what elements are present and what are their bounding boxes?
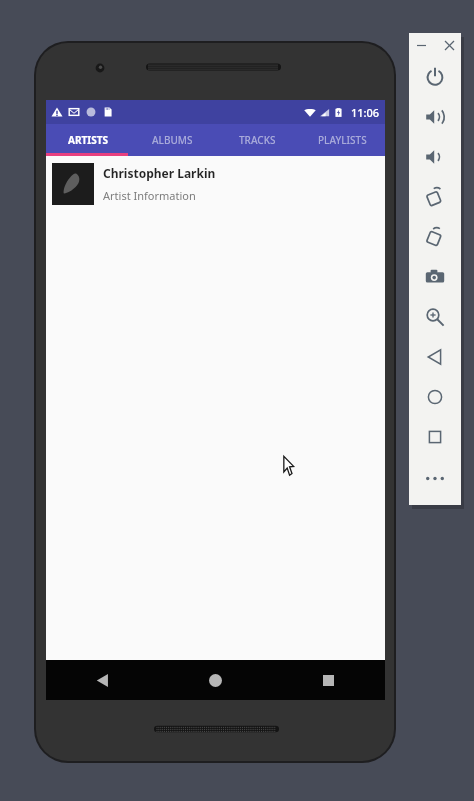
- button[interactable]: TRACKS: [215, 124, 300, 156]
- button[interactable]: Back: [409, 337, 461, 377]
- staticText: 11:06: [351, 105, 380, 120]
- staticText: ARTISTS: [68, 133, 108, 147]
- button[interactable]: Minimize: [412, 36, 430, 54]
- button[interactable]: ALBUMS: [130, 124, 215, 156]
- button[interactable]: Home: [409, 377, 461, 417]
- button[interactable]: Take screenshot: [409, 257, 461, 297]
- button[interactable]: Rotate right: [409, 217, 461, 257]
- button[interactable]: Rotate left: [409, 177, 461, 217]
- button[interactable]: Volume down: [409, 137, 461, 177]
- button[interactable]: More: [415, 465, 455, 491]
- button[interactable]: Christopher Larkin: [46, 156, 385, 212]
- button[interactable]: Back: [46, 660, 159, 700]
- button[interactable]: Power: [409, 57, 461, 97]
- staticText: Christopher Larkin: [103, 165, 216, 181]
- button[interactable]: Close: [440, 36, 458, 54]
- button[interactable]: Volume up: [409, 97, 461, 137]
- staticText: Artist Information: [103, 188, 196, 203]
- staticText: TRACKS: [239, 133, 276, 147]
- button[interactable]: Home: [159, 660, 272, 700]
- staticText: PLAYLISTS: [318, 133, 367, 147]
- button[interactable]: ARTISTS: [46, 124, 130, 156]
- button[interactable]: Recent apps: [272, 660, 385, 700]
- button[interactable]: PLAYLISTS: [300, 124, 385, 156]
- staticText: ALBUMS: [152, 133, 193, 147]
- button[interactable]: Zoom: [409, 297, 461, 337]
- button[interactable]: Overview: [409, 417, 461, 457]
